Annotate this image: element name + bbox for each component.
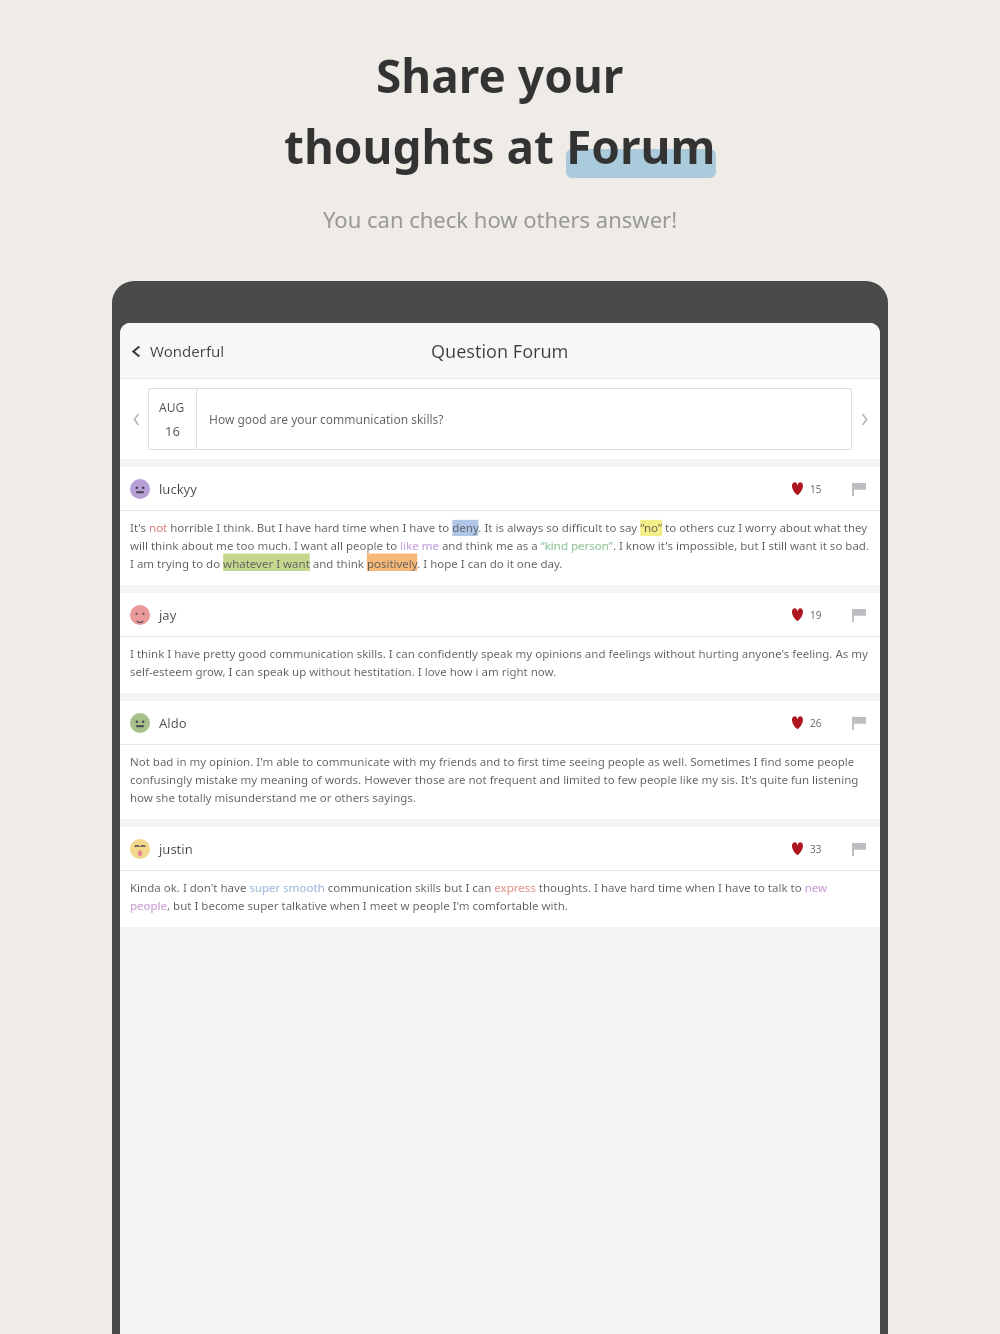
- staticText: Forum: [566, 115, 716, 178]
- staticText: 26: [810, 716, 822, 730]
- staticText: 33: [810, 842, 822, 856]
- staticText: Kinda ok. I don't have super smooth comm…: [130, 880, 870, 913]
- staticText: Aldo: [159, 714, 187, 732]
- button[interactable]: Like: [786, 711, 826, 734]
- button[interactable]: Next day: [852, 407, 876, 431]
- button[interactable]: Previous day: [124, 407, 148, 431]
- button[interactable]: Aldo: [130, 713, 187, 733]
- button[interactable]: jay: [130, 605, 177, 625]
- staticText: Question Forum: [431, 339, 569, 364]
- staticText: Not bad in my opinion. I'm able to commu…: [130, 754, 870, 805]
- staticText: You can check how others answer!: [323, 204, 678, 234]
- staticText: Wonderful: [150, 341, 225, 361]
- staticText: 16: [165, 422, 180, 440]
- button[interactable]: luckyy: [130, 479, 197, 499]
- button[interactable]: AUG: [148, 388, 852, 450]
- staticText: 15: [810, 482, 822, 496]
- staticText: luckyy: [159, 480, 197, 498]
- staticText: It's not horrible I think. But I have ha…: [130, 520, 870, 571]
- staticText: AUG: [159, 399, 185, 415]
- staticText: How good are your communication skills?: [209, 411, 444, 427]
- staticText: 19: [810, 608, 822, 622]
- button[interactable]: Like: [786, 837, 826, 860]
- staticText: I think I have pretty good communication…: [130, 646, 870, 679]
- staticText: Share your: [376, 44, 624, 107]
- button[interactable]: Like: [786, 477, 826, 500]
- staticText: thoughts at: [284, 115, 566, 178]
- staticText: jay: [159, 606, 177, 624]
- button[interactable]: Like: [786, 603, 826, 626]
- button[interactable]: Wonderful: [124, 335, 231, 367]
- staticText: justin: [159, 840, 193, 858]
- button[interactable]: Report: [848, 838, 870, 860]
- button[interactable]: Report: [848, 712, 870, 734]
- button[interactable]: justin: [130, 839, 193, 859]
- button[interactable]: Report: [848, 478, 870, 500]
- button[interactable]: Report: [848, 604, 870, 626]
